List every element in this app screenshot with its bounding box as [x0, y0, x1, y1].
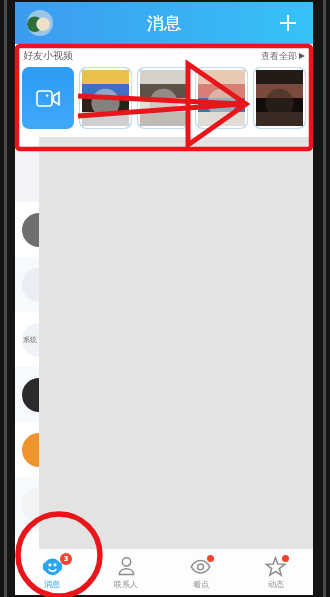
button[interactable]: Add	[273, 8, 303, 38]
button[interactable]: 查看全部	[261, 50, 305, 61]
staticText: 查看全部	[261, 50, 297, 61]
staticText: 好友小视频	[23, 49, 73, 62]
staticText: 消息	[147, 13, 181, 34]
button[interactable]: 动态	[238, 549, 313, 595]
button[interactable]	[15, 367, 313, 422]
button[interactable]	[15, 147, 313, 202]
button[interactable]: 看点	[163, 549, 238, 595]
staticText: 系统	[23, 335, 37, 344]
button[interactable]: Friend video	[137, 67, 190, 129]
button[interactable]: Friend video	[79, 67, 132, 129]
button[interactable]: 联系人	[89, 549, 163, 595]
staticText: 动态	[268, 579, 284, 589]
button[interactable]: Record video	[22, 67, 74, 129]
staticText: 3	[64, 554, 69, 564]
button[interactable]	[15, 202, 313, 257]
button[interactable]: Friend video	[253, 67, 306, 129]
staticText: 联系人	[114, 579, 138, 589]
staticText: 消息	[44, 579, 60, 589]
button[interactable]: Friend video	[195, 67, 248, 129]
staticText: 看点	[193, 579, 209, 589]
button[interactable]	[15, 257, 313, 312]
button[interactable]: 3	[15, 549, 89, 595]
button[interactable]	[15, 422, 313, 477]
button[interactable]: 系统	[15, 312, 313, 367]
button[interactable]: Profile	[27, 10, 53, 36]
button[interactable]	[15, 477, 313, 532]
